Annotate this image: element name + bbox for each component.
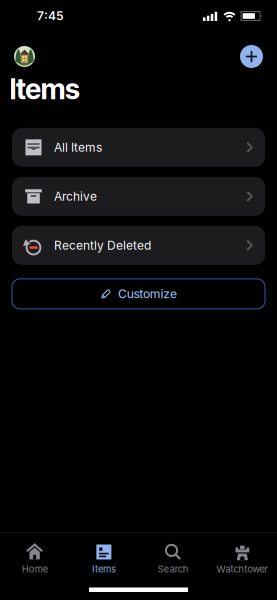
button[interactable]: Home (0, 543, 69, 574)
button[interactable]: Items (69, 543, 138, 574)
button[interactable]: Watchtower (208, 543, 277, 574)
button[interactable]: Customize (12, 279, 265, 309)
staticText: All Items (54, 140, 102, 154)
button[interactable]: Account (14, 46, 35, 67)
staticText: Archive (54, 189, 97, 203)
staticText: Home (22, 563, 48, 574)
button[interactable]: Recently Deleted (12, 226, 265, 265)
button[interactable]: Search (138, 543, 208, 574)
staticText: Items (9, 72, 80, 106)
button[interactable]: Add Item (240, 45, 263, 68)
staticText: 7:45 (37, 9, 64, 23)
staticText: Items (92, 563, 116, 574)
staticText: Recently Deleted (54, 238, 151, 252)
button[interactable]: All Items (12, 128, 265, 167)
staticText: Watchtower (216, 563, 268, 574)
staticText: Customize (118, 287, 177, 301)
button[interactable]: Archive (12, 177, 265, 216)
staticText: Search (158, 563, 189, 574)
